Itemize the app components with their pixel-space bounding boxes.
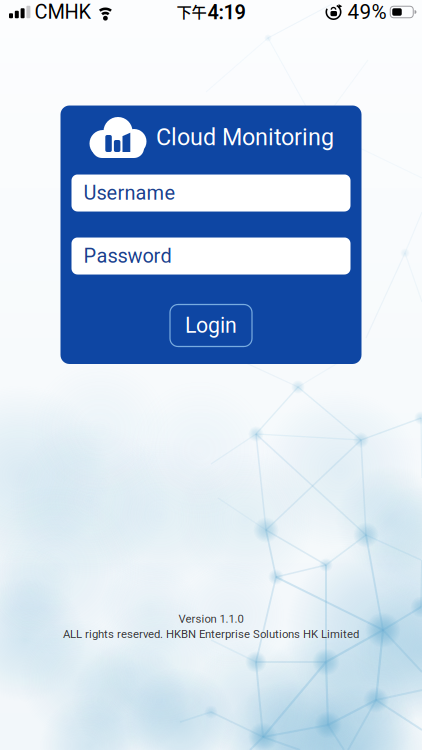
button[interactable]: Username xyxy=(71,174,350,211)
staticText: Version 1.1.0 xyxy=(178,612,243,625)
staticText: 49% xyxy=(347,0,386,24)
staticText: CMHK xyxy=(34,0,91,24)
staticText: Login xyxy=(185,313,237,338)
button[interactable]: Login xyxy=(170,304,252,346)
staticText: 下午 xyxy=(176,0,206,22)
staticText: ALL rights reserved. HKBN Enterprise Sol… xyxy=(63,627,359,641)
staticText: Username xyxy=(83,181,175,205)
button[interactable]: Password xyxy=(71,237,350,274)
staticText: 4:19 xyxy=(207,1,245,24)
staticText: Password xyxy=(83,244,171,268)
staticText: Cloud Monitoring xyxy=(156,124,334,151)
